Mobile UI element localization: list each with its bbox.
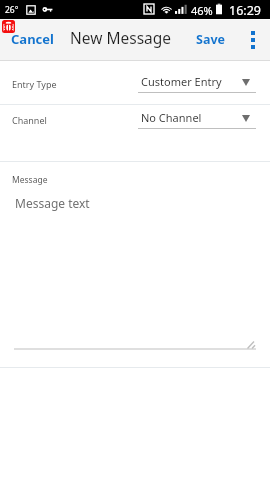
staticText: 46%	[191, 3, 213, 18]
button[interactable]: Channel	[0, 105, 270, 161]
staticText: Cancel	[11, 30, 54, 48]
button[interactable]: Cancel	[0, 19, 65, 61]
staticText: No Channel	[141, 110, 202, 125]
staticText: Entry Type	[12, 78, 57, 90]
staticText: Message text	[15, 195, 90, 211]
button[interactable]: Message	[0, 162, 270, 352]
staticText: New Message	[70, 27, 172, 48]
staticText: 16:29	[229, 2, 261, 19]
staticText: Save	[196, 31, 225, 48]
button[interactable]: Entry Type	[0, 61, 270, 104]
staticText: 26°	[5, 4, 19, 16]
button[interactable]: Save	[185, 19, 238, 61]
staticText: Message	[12, 174, 48, 186]
staticText: Customer Entry	[141, 74, 222, 89]
button[interactable]: More options	[238, 19, 268, 61]
staticText: Channel	[12, 114, 47, 126]
